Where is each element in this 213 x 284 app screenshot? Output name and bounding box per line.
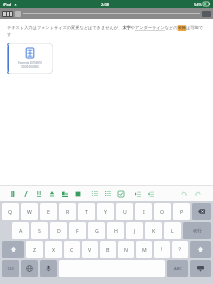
button[interactable]: S — [31, 222, 48, 239]
staticText: 。 — [183, 254, 186, 257]
staticText: 54% — [194, 2, 202, 7]
button[interactable]: Highlight — [47, 189, 56, 198]
staticText: U — [123, 208, 127, 215]
staticText: C — [70, 246, 74, 253]
button[interactable]: V — [82, 241, 98, 258]
staticText: ？ — [177, 246, 183, 253]
button[interactable]: Indent — [133, 189, 142, 198]
button[interactable]: numbers — [2, 260, 19, 277]
button[interactable]: delete — [192, 203, 211, 220]
button[interactable]: 改行 — [183, 222, 211, 239]
button[interactable]: Z — [26, 241, 43, 258]
staticText: A — [19, 227, 23, 234]
staticText: N — [124, 246, 128, 253]
staticText: iPad — [3, 2, 12, 7]
button[interactable]: dictation — [40, 260, 57, 277]
staticText: テキスト入力はフォントサイズの変更などはできませんが、太字やアンダーラインなどの… — [7, 25, 206, 37]
staticText: B — [106, 246, 110, 253]
button[interactable]: P — [173, 203, 190, 220]
button[interactable]: L — [164, 222, 181, 239]
button[interactable]: ？ — [172, 241, 188, 258]
staticText: V — [88, 246, 92, 253]
staticText: 改行 — [193, 228, 202, 234]
button[interactable]: Bulleted list — [90, 189, 99, 198]
button[interactable]: K — [145, 222, 162, 239]
button[interactable]: R — [59, 203, 76, 220]
staticText: S — [38, 227, 41, 234]
button[interactable]: C — [64, 241, 80, 258]
button[interactable]: Text color — [60, 189, 69, 198]
button[interactable]: O — [154, 203, 171, 220]
button[interactable]: Numbered list — [103, 189, 112, 198]
staticText: D — [57, 227, 61, 234]
button[interactable]: ！ — [154, 241, 170, 258]
staticText: L — [171, 227, 174, 234]
staticText: Z — [33, 246, 36, 253]
staticText: F — [76, 227, 79, 234]
button[interactable]: E — [40, 203, 57, 220]
button[interactable]: hide keyboard — [190, 260, 211, 277]
button[interactable]: U — [116, 203, 133, 220]
staticText: W — [27, 208, 32, 215]
button[interactable]: Strikethrough — [73, 189, 82, 198]
button[interactable]: Italic — [21, 189, 30, 198]
staticText: Y — [104, 208, 107, 215]
staticText: O — [160, 208, 165, 215]
button[interactable]: Q — [2, 203, 19, 220]
button[interactable]: Underline — [34, 189, 43, 198]
button[interactable]: Undo — [15, 11, 21, 17]
button[interactable]: Bold — [8, 189, 17, 198]
staticText: H — [114, 227, 118, 234]
button[interactable]: Documents — [2, 11, 13, 17]
button[interactable]: N — [118, 241, 134, 258]
staticText: Q — [8, 208, 13, 215]
button[interactable]: shift right — [190, 241, 211, 258]
button[interactable]: Y — [97, 203, 114, 220]
button[interactable]: Redo — [193, 189, 202, 198]
staticText: M — [142, 246, 147, 253]
staticText: R — [66, 208, 70, 215]
button[interactable]: A — [12, 222, 29, 239]
staticText: X — [52, 246, 56, 253]
staticText: T — [85, 208, 88, 215]
button[interactable]: I — [135, 203, 152, 220]
staticText: Evernote 20150810 00:00 00:0000 — [18, 61, 42, 69]
button[interactable]: Checklist — [116, 189, 125, 198]
staticText: 2:08 — [101, 2, 109, 7]
staticText: E — [47, 208, 50, 215]
button[interactable]: More — [202, 11, 211, 17]
button[interactable]: shift — [2, 241, 24, 258]
button[interactable]: G — [88, 222, 105, 239]
button[interactable]: Outdent — [146, 189, 155, 198]
staticText: ！ — [159, 246, 165, 253]
button[interactable]: M — [136, 241, 152, 258]
staticText: 123 — [7, 266, 14, 271]
button[interactable]: emoji — [21, 260, 38, 277]
button[interactable]: Undo — [179, 189, 188, 198]
staticText: J — [134, 227, 136, 234]
staticText: G — [95, 227, 99, 234]
button[interactable]: D — [50, 222, 67, 239]
button[interactable]: T — [78, 203, 95, 220]
button[interactable]: W — [21, 203, 38, 220]
button[interactable]: J — [126, 222, 143, 239]
button[interactable]: B — [100, 241, 116, 258]
staticText: I — [143, 208, 145, 215]
button[interactable]: Evernote 20150810 00:00 00:0000 — [7, 43, 53, 74]
staticText: P — [180, 208, 184, 215]
button[interactable]: H — [107, 222, 124, 239]
staticText: K — [152, 227, 156, 234]
button[interactable]: F — [69, 222, 86, 239]
button[interactable]: X — [45, 241, 62, 258]
staticText: ABC — [174, 266, 182, 271]
button[interactable]: ABC — [167, 260, 188, 277]
